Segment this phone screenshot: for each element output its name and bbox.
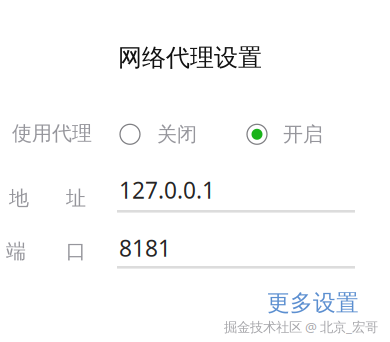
staticText: 使用代理 <box>12 121 92 146</box>
staticText: 关闭 <box>157 122 197 147</box>
staticText: 址 <box>66 186 86 211</box>
staticText: 开启 <box>283 122 323 147</box>
button[interactable]: 更多设置 <box>263 286 363 320</box>
staticText: 掘金技术社区 @ 北京_宏哥 <box>224 318 378 336</box>
button[interactable]: 127.0.0.1 <box>117 175 357 219</box>
staticText: 127.0.0.1 <box>119 175 215 205</box>
staticText: 地 <box>9 186 29 211</box>
staticText: 更多设置 <box>267 289 359 317</box>
staticText: 口 <box>66 239 86 264</box>
staticText: 8181 <box>119 233 171 263</box>
button[interactable]: 关闭 <box>120 122 197 147</box>
button[interactable]: 8181 <box>117 233 357 277</box>
staticText: 端 <box>6 239 26 264</box>
button[interactable]: 开启 <box>247 122 323 147</box>
staticText: 网络代理设置 <box>118 43 262 72</box>
